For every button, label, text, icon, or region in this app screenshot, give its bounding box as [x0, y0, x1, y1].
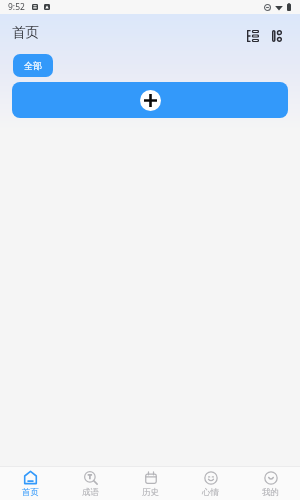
staticText: 首页 [12, 24, 39, 41]
button[interactable]: 首页 [0, 467, 60, 500]
button[interactable]: Sort [244, 27, 262, 45]
staticText: 心情 [202, 487, 219, 498]
staticText: 全部 [24, 60, 42, 71]
button[interactable]: 心情 [180, 467, 240, 500]
staticText: 成语 [82, 487, 99, 498]
button[interactable]: Add [12, 82, 288, 118]
staticText: 首页 [22, 487, 39, 498]
button[interactable]: 历史 [120, 467, 180, 500]
button[interactable]: 成语 [60, 467, 120, 500]
button[interactable]: 全部 [13, 54, 53, 77]
button[interactable]: 我的 [240, 467, 300, 500]
button[interactable]: Layout [268, 27, 286, 45]
staticText: 我的 [262, 487, 279, 498]
staticText: 历史 [142, 487, 159, 498]
staticText: 9:52 [8, 1, 25, 13]
